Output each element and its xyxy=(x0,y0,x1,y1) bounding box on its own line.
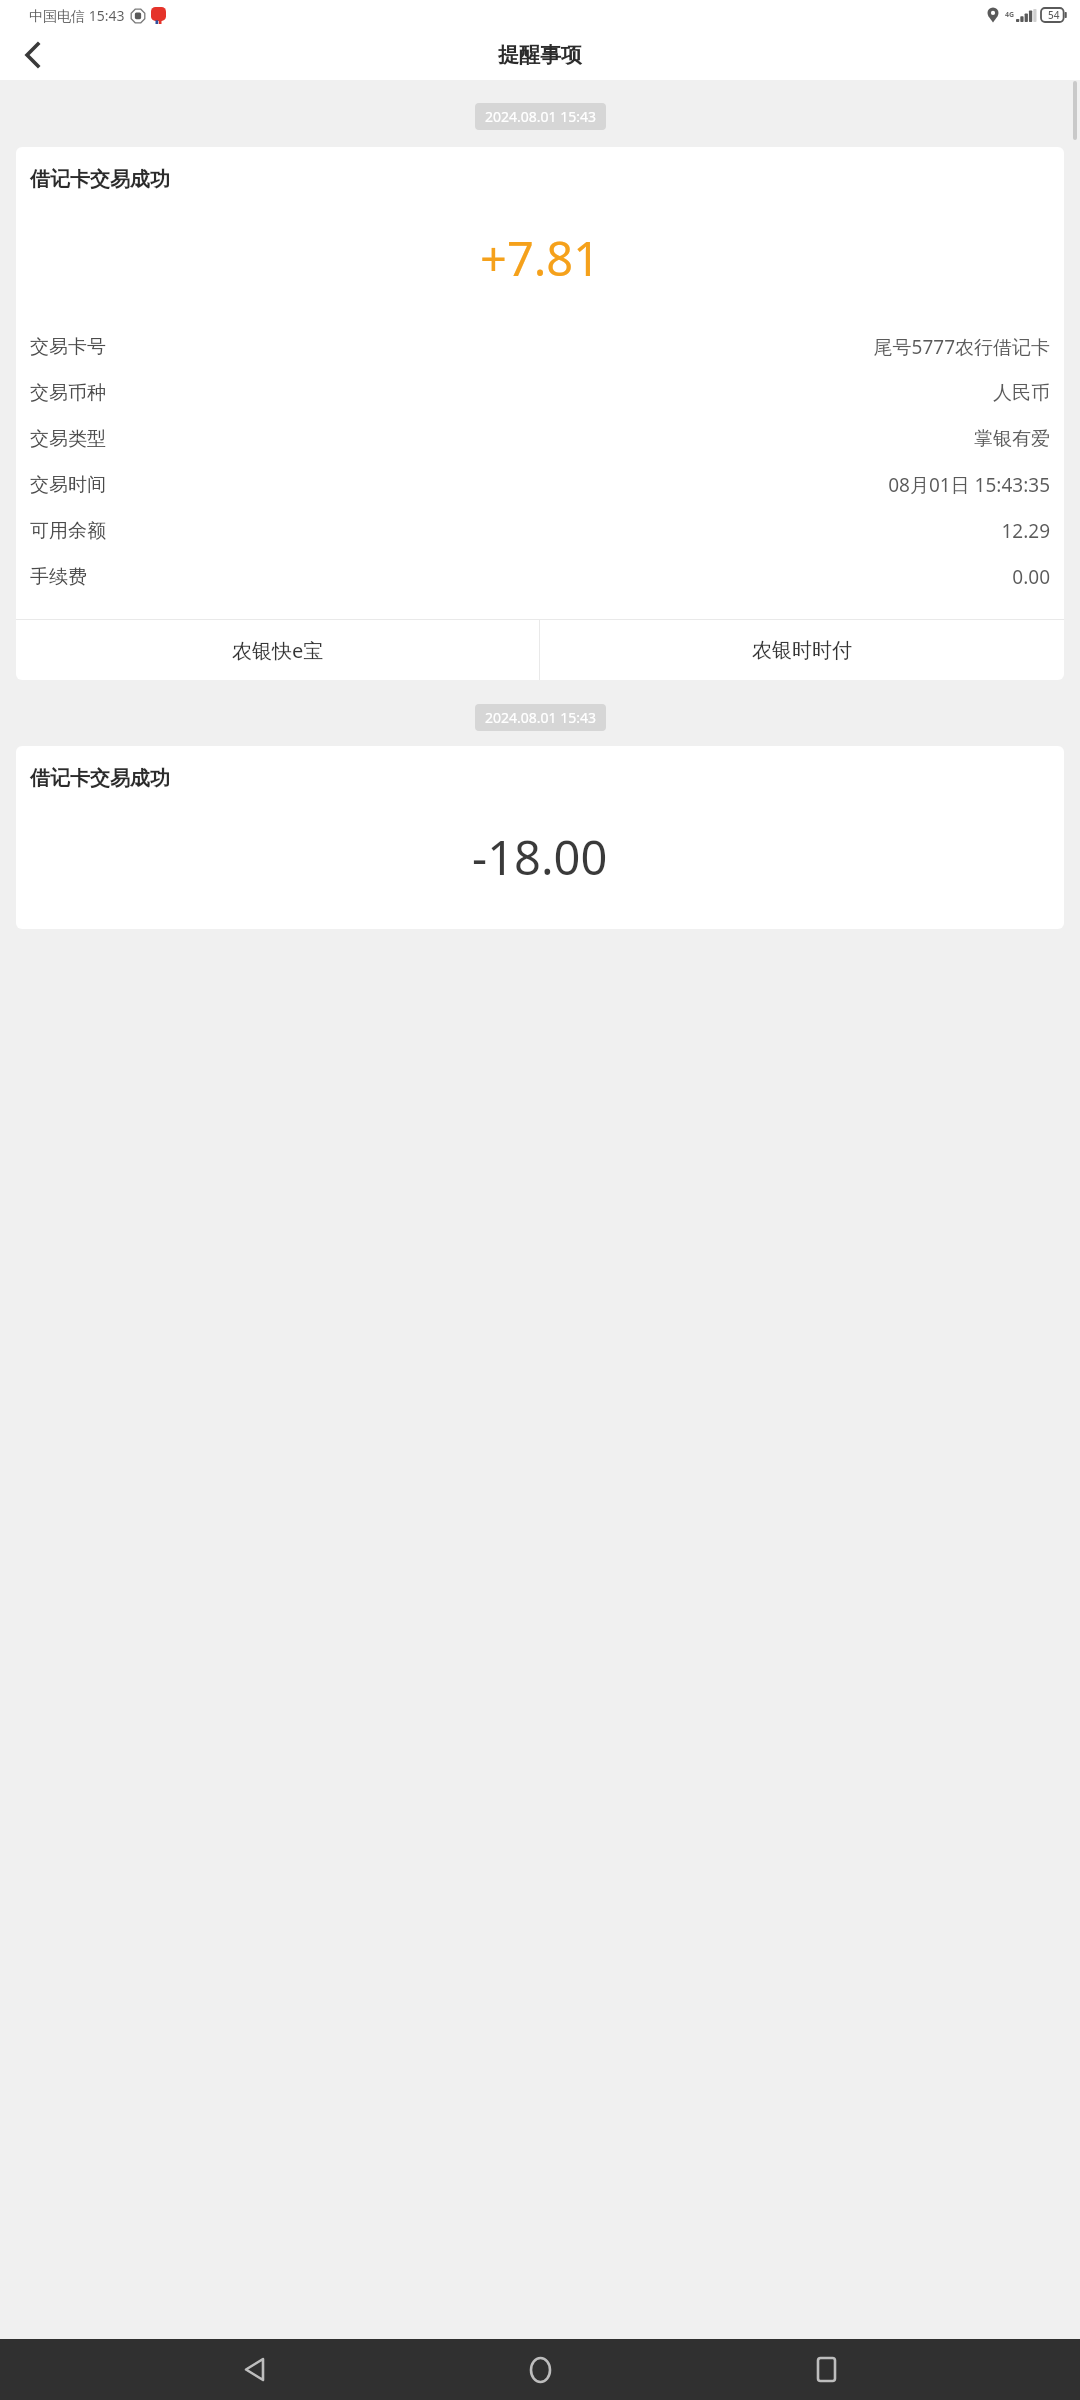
staticText: 尾号5777农行借记卡 xyxy=(873,334,1050,360)
button[interactable]: 农银快e宝 xyxy=(16,620,539,680)
staticText: 08月01日 15:43:35 xyxy=(888,472,1050,498)
staticText: 2024.08.01 15:43 xyxy=(485,708,596,727)
staticText: 借记卡交易成功 xyxy=(30,766,170,791)
staticText: 交易币种 xyxy=(30,381,106,405)
staticText: 4G xyxy=(1005,10,1015,20)
staticText: 0.00 xyxy=(1012,564,1050,590)
staticText: 借记卡交易成功 xyxy=(30,167,170,192)
staticText: 12.29 xyxy=(1001,518,1050,544)
staticText: 交易类型 xyxy=(30,427,106,451)
staticText: +7.81 xyxy=(480,226,601,290)
staticText: 2024.08.01 15:43 xyxy=(485,107,596,126)
staticText: 中国电信 15:43 xyxy=(29,6,125,25)
staticText: 提醒事项 xyxy=(498,42,582,68)
staticText: 人民币 xyxy=(993,381,1050,405)
staticText: 交易时间 xyxy=(30,473,106,497)
button[interactable]: 借记卡交易成功 xyxy=(16,147,1064,680)
staticText: 54 xyxy=(1048,8,1060,22)
staticText: 可用余额 xyxy=(30,519,106,543)
button[interactable]: 农银时时付 xyxy=(540,620,1064,680)
button[interactable]: 返回 xyxy=(8,31,56,79)
button[interactable]: 借记卡交易成功 xyxy=(16,746,1064,929)
staticText: 农银时时付 xyxy=(752,638,852,663)
button[interactable]: 最近任务 xyxy=(794,2339,858,2400)
button[interactable]: 主屏幕 xyxy=(508,2339,572,2400)
button[interactable]: 返回 xyxy=(222,2339,286,2400)
staticText: -18.00 xyxy=(472,825,608,889)
staticText: 农银快e宝 xyxy=(232,637,324,664)
staticText: 交易卡号 xyxy=(30,335,106,359)
staticText: 手续费 xyxy=(30,565,87,589)
staticText: 掌银有爱 xyxy=(974,427,1050,451)
